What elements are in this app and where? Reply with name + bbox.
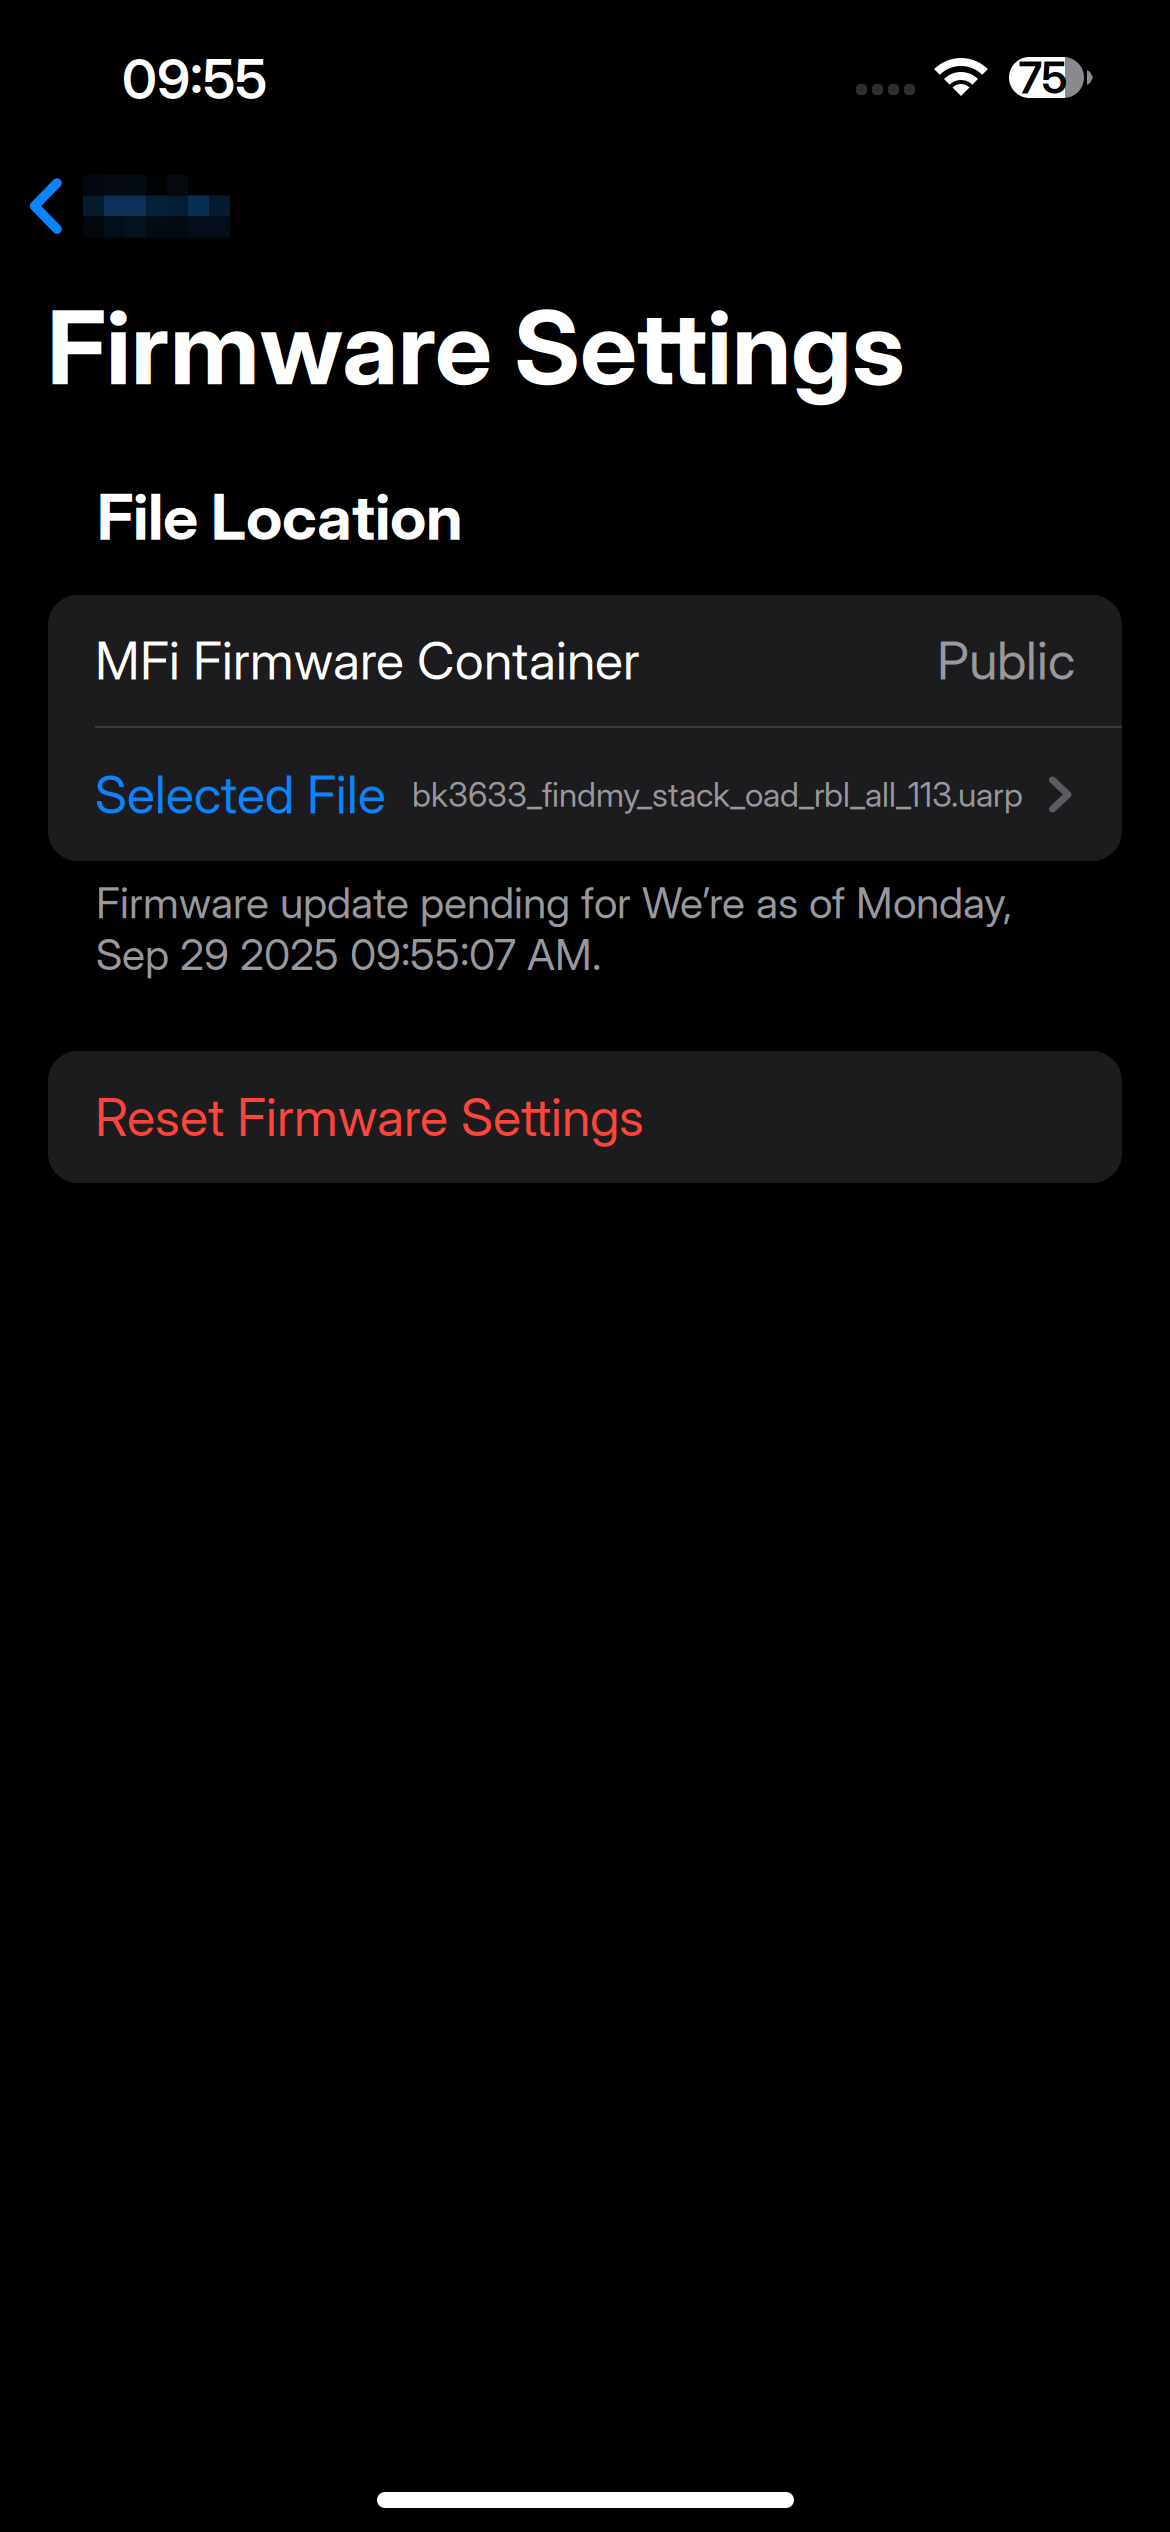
staticText: 75 <box>1018 51 1067 104</box>
staticText: Selected File <box>95 763 386 826</box>
staticText: File Location <box>97 479 463 555</box>
staticText: 09:55 <box>122 46 267 112</box>
button[interactable]: Back <box>0 162 254 250</box>
staticText: Reset Firmware Settings <box>95 1085 644 1148</box>
button[interactable]: Selected File <box>48 728 1122 861</box>
staticText: bk3633_findmy_stack_oad_rbl_all_113.uarp <box>412 774 1023 815</box>
staticText: Firmware Settings <box>47 286 905 409</box>
staticText: Public <box>937 629 1075 692</box>
staticText: Sep 29 2025 09:55:07 AM. <box>96 929 601 980</box>
staticText: Firmware update pending for We’re as of … <box>96 877 1012 929</box>
button[interactable]: Reset Firmware Settings <box>48 1051 1122 1183</box>
staticText: MFi Firmware Container <box>95 629 640 692</box>
